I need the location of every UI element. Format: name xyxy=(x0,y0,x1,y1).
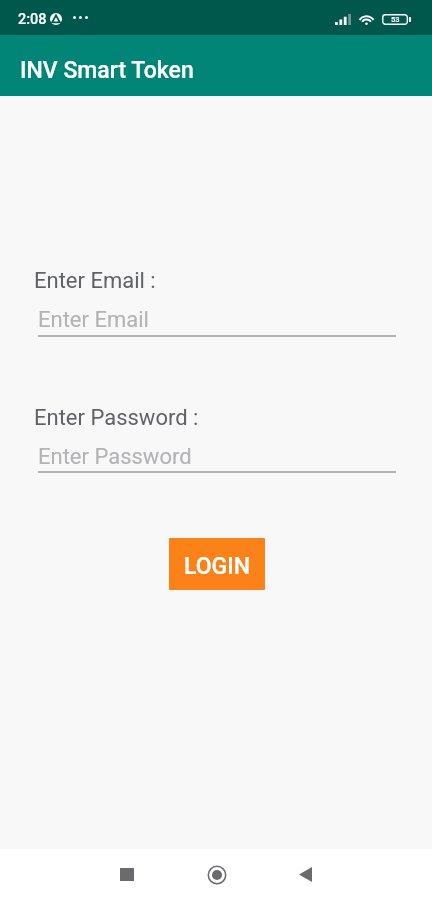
button[interactable]: Enter Email field xyxy=(38,301,396,337)
button[interactable]: Back xyxy=(260,849,350,900)
button[interactable]: Recent apps xyxy=(82,849,172,900)
staticText: LOGIN xyxy=(184,553,251,580)
staticText: Enter Email : xyxy=(34,268,156,294)
button[interactable]: Home xyxy=(172,849,262,900)
staticText: 53 xyxy=(391,15,400,24)
staticText: Enter Password : xyxy=(34,405,199,431)
button[interactable]: Enter Password field xyxy=(38,438,396,473)
staticText: Enter Password xyxy=(38,444,192,470)
staticText: Enter Email xyxy=(38,307,149,333)
staticText: INV Smart Token xyxy=(20,57,194,84)
button[interactable]: LOGIN xyxy=(169,538,265,590)
staticText: 2:08 xyxy=(18,11,47,28)
